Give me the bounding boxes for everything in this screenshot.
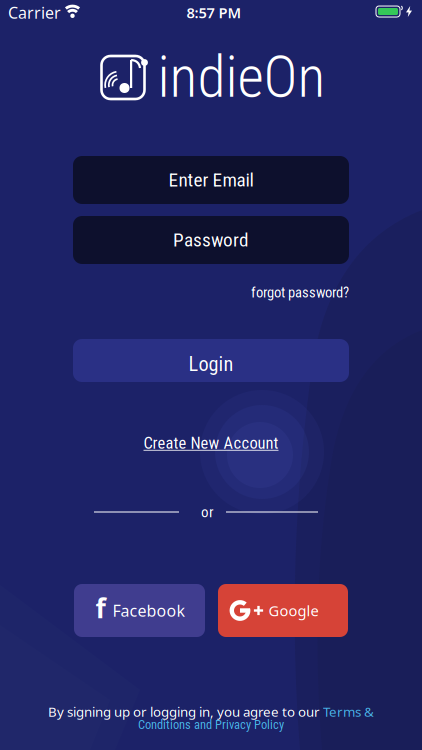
staticText: indieOn <box>157 43 325 111</box>
button[interactable]: Login <box>73 339 349 382</box>
staticText: 8:57 PM <box>186 3 241 22</box>
staticText: Google <box>268 601 318 620</box>
staticText: Terms & <box>323 703 374 720</box>
button[interactable]: Terms & <box>323 703 374 720</box>
button[interactable]: Enter Email <box>73 156 349 204</box>
button[interactable]: forgot password? <box>251 284 349 301</box>
button[interactable]: Password <box>73 216 349 264</box>
staticText: Login <box>188 352 233 376</box>
button[interactable]: Google <box>218 584 348 637</box>
staticText: Password <box>173 229 249 251</box>
button[interactable]: Conditions and Privacy Policy <box>138 717 284 732</box>
button[interactable]: f <box>74 584 205 637</box>
button[interactable]: Create New Account <box>143 435 278 454</box>
staticText: forgot password? <box>251 284 349 301</box>
staticText: By signing up or logging in, you agree t… <box>48 703 323 720</box>
staticText: Carrier <box>8 2 61 23</box>
staticText: Create New Account <box>143 433 278 453</box>
staticText: f <box>95 590 105 626</box>
staticText: Enter Email <box>168 169 253 191</box>
staticText: Facebook <box>112 600 185 621</box>
staticText: Conditions and Privacy Policy <box>138 717 284 732</box>
staticText: or <box>201 503 214 521</box>
